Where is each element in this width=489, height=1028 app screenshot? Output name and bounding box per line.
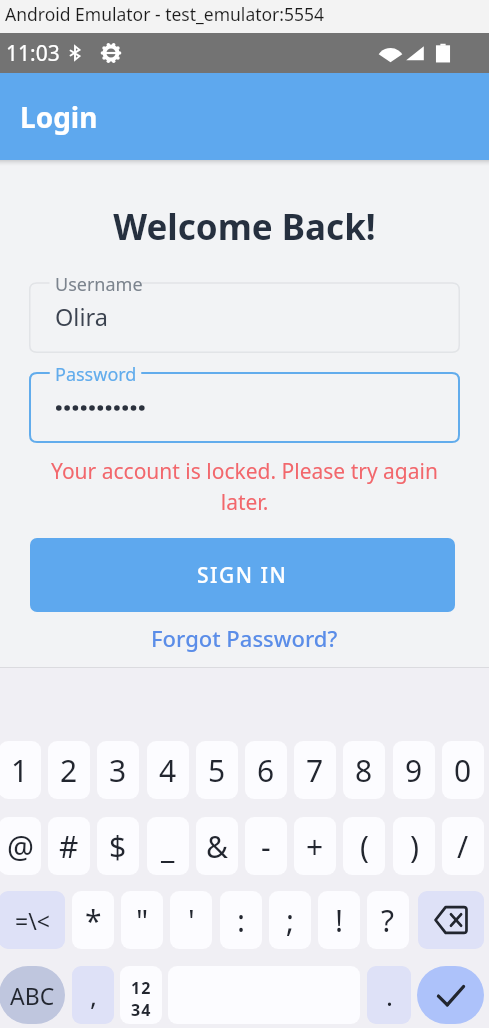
- button[interactable]: $: [97, 817, 139, 875]
- staticText: /: [457, 826, 469, 867]
- staticText: ABC: [10, 980, 55, 1011]
- staticText: 5: [208, 750, 226, 791]
- staticText: &: [206, 826, 228, 867]
- staticText: ?: [381, 900, 395, 941]
- button[interactable]: +: [294, 817, 336, 875]
- button[interactable]: 9: [393, 741, 435, 799]
- button[interactable]: !: [318, 891, 360, 949]
- staticText: ,: [90, 978, 97, 1013]
- button[interactable]: Numbers: [120, 966, 162, 1024]
- staticText: Android Emulator - test_emulator:5554: [5, 2, 325, 26]
- button[interactable]: &: [196, 817, 238, 875]
- staticText: Your account is locked. Please try again…: [27, 457, 462, 516]
- staticText: *: [85, 900, 102, 941]
- button[interactable]: *: [72, 891, 114, 949]
- button[interactable]: ?: [367, 891, 409, 949]
- button[interactable]: Forgot Password?: [141, 617, 348, 659]
- staticText: Welcome Back!: [0, 203, 489, 251]
- staticText: @: [7, 826, 34, 867]
- staticText: SIGN IN: [197, 561, 288, 590]
- button[interactable]: 0: [442, 741, 484, 799]
- staticText: Password: [55, 362, 137, 387]
- staticText: 0: [454, 750, 472, 791]
- staticText: 3: [109, 750, 127, 791]
- staticText: ): [410, 826, 419, 867]
- staticText: !: [335, 900, 344, 941]
- button[interactable]: SIGN IN: [30, 538, 455, 612]
- button[interactable]: (: [343, 817, 385, 875]
- button[interactable]: 1: [0, 741, 41, 799]
- staticText: 8: [355, 750, 373, 791]
- button[interactable]: :: [220, 891, 262, 949]
- staticText: 2: [60, 750, 78, 791]
- button[interactable]: 5: [196, 741, 238, 799]
- button[interactable]: ;: [269, 891, 311, 949]
- button[interactable]: /: [442, 817, 484, 875]
- button[interactable]: _: [147, 817, 189, 875]
- button[interactable]: Backspace: [418, 891, 484, 949]
- staticText: -: [261, 826, 271, 867]
- staticText: :: [237, 900, 246, 941]
- staticText: Forgot Password?: [151, 623, 338, 653]
- staticText: 12: [131, 977, 152, 999]
- staticText: $: [109, 826, 127, 867]
- button[interactable]: #: [48, 817, 90, 875]
- button[interactable]: ABC: [0, 966, 65, 1024]
- button[interactable]: @: [0, 817, 41, 875]
- staticText: 11:03: [6, 39, 60, 68]
- staticText: 4: [159, 750, 177, 791]
- staticText: =\<: [15, 905, 50, 936]
- staticText: ": [136, 900, 149, 941]
- button[interactable]: 4: [147, 741, 189, 799]
- button[interactable]: 6: [245, 741, 287, 799]
- button[interactable]: 3: [97, 741, 139, 799]
- staticText: ': [188, 900, 195, 941]
- staticText: Username: [55, 272, 143, 297]
- button[interactable]: -: [245, 817, 287, 875]
- button[interactable]: .: [367, 966, 411, 1024]
- staticText: ;: [286, 900, 295, 941]
- staticText: 1: [11, 750, 29, 791]
- staticText: Olira: [55, 301, 108, 333]
- button[interactable]: ,: [72, 966, 114, 1024]
- button[interactable]: Enter: [417, 966, 484, 1024]
- button[interactable]: ': [170, 891, 212, 949]
- staticText: 7: [306, 750, 324, 791]
- button[interactable]: 7: [294, 741, 336, 799]
- staticText: 34: [131, 999, 152, 1021]
- button[interactable]: =\<: [0, 891, 65, 949]
- button[interactable]: ": [121, 891, 163, 949]
- staticText: +: [306, 826, 324, 867]
- button[interactable]: 8: [343, 741, 385, 799]
- staticText: Login: [20, 98, 98, 136]
- staticText: _: [161, 826, 175, 867]
- staticText: (: [360, 826, 369, 867]
- staticText: .: [386, 978, 393, 1013]
- button[interactable]: ): [393, 817, 435, 875]
- staticText: 6: [257, 750, 275, 791]
- staticText: #: [59, 826, 79, 867]
- button[interactable]: 2: [48, 741, 90, 799]
- staticText: 9: [405, 750, 423, 791]
